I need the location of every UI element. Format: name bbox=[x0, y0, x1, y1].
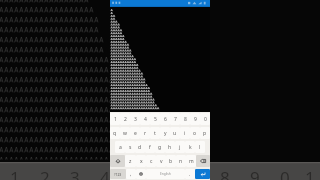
staticText: , bbox=[130, 171, 132, 178]
button[interactable]: u bbox=[170, 127, 180, 139]
button[interactable]: y bbox=[160, 127, 170, 139]
button[interactable]: h bbox=[165, 141, 175, 153]
staticText: h bbox=[168, 144, 172, 151]
staticText: 9 bbox=[250, 166, 260, 180]
staticText: g bbox=[158, 144, 162, 151]
staticText: 4 bbox=[144, 116, 147, 123]
staticText: 3 bbox=[134, 116, 137, 123]
staticText: 6 bbox=[160, 166, 170, 180]
button[interactable]: 1 bbox=[110, 113, 120, 125]
staticText: q bbox=[113, 130, 117, 137]
button[interactable]: , bbox=[126, 169, 136, 179]
staticText: 3 bbox=[70, 166, 80, 180]
button[interactable]: 8 bbox=[180, 113, 190, 125]
button[interactable]: 3 bbox=[130, 113, 140, 125]
staticText: x bbox=[140, 158, 143, 165]
staticText: t bbox=[154, 130, 156, 137]
button[interactable]: 6 bbox=[160, 113, 170, 125]
button[interactable]: s bbox=[125, 141, 135, 153]
button[interactable]: w bbox=[120, 127, 130, 139]
staticText: 7 bbox=[174, 116, 177, 123]
button[interactable]: f bbox=[145, 141, 155, 153]
staticText: r bbox=[144, 130, 147, 137]
button[interactable]: e bbox=[130, 127, 140, 139]
button[interactable]: Enter bbox=[195, 169, 210, 179]
staticText: u bbox=[173, 130, 177, 137]
button[interactable]: Backspace bbox=[196, 155, 210, 167]
staticText: 5 bbox=[154, 116, 157, 123]
staticText: 8 bbox=[184, 116, 187, 123]
staticText: 1 bbox=[305, 166, 315, 180]
staticText: a bbox=[119, 144, 122, 151]
button[interactable]: j bbox=[175, 141, 185, 153]
button[interactable]: 5 bbox=[150, 113, 160, 125]
staticText: e bbox=[134, 130, 137, 137]
staticText: i bbox=[184, 130, 186, 137]
button[interactable]: v bbox=[156, 155, 166, 167]
staticText: 1 bbox=[114, 116, 117, 123]
button[interactable]: r bbox=[140, 127, 150, 139]
staticText: 5 bbox=[130, 166, 140, 180]
button[interactable]: x bbox=[136, 155, 146, 167]
button[interactable]: m bbox=[186, 155, 196, 167]
staticText: s bbox=[129, 144, 132, 151]
button[interactable]: English bbox=[146, 169, 185, 179]
staticText: 2 bbox=[40, 166, 50, 180]
staticText: 2 bbox=[124, 116, 127, 123]
staticText: 0 bbox=[204, 116, 207, 123]
button[interactable]: q bbox=[110, 127, 120, 139]
button[interactable]: i bbox=[180, 127, 190, 139]
staticText: 8 bbox=[220, 166, 230, 180]
button[interactable]: c bbox=[146, 155, 156, 167]
button[interactable]: . bbox=[185, 169, 195, 179]
staticText: . bbox=[189, 171, 191, 178]
staticText: 6 bbox=[164, 116, 167, 123]
button[interactable]: n bbox=[176, 155, 186, 167]
staticText: b bbox=[169, 158, 173, 165]
button[interactable]: b bbox=[166, 155, 176, 167]
button[interactable]: Shift bbox=[110, 155, 125, 167]
staticText: 9 bbox=[194, 116, 197, 123]
button[interactable]: o bbox=[190, 127, 200, 139]
staticText: p bbox=[203, 130, 207, 137]
staticText: d bbox=[138, 144, 142, 151]
staticText: l bbox=[199, 144, 201, 151]
staticText: 0 bbox=[280, 166, 290, 180]
staticText: f bbox=[149, 144, 151, 151]
staticText: 7 bbox=[190, 166, 200, 180]
staticText: ?123 bbox=[114, 172, 122, 177]
button[interactable]: 0 bbox=[200, 113, 210, 125]
button[interactable]: k bbox=[185, 141, 195, 153]
button[interactable]: 7 bbox=[170, 113, 180, 125]
staticText: z bbox=[129, 158, 132, 165]
staticText: m bbox=[189, 158, 194, 165]
staticText: 1 bbox=[10, 166, 20, 180]
button[interactable]: 4 bbox=[140, 113, 150, 125]
button[interactable]: a bbox=[115, 141, 125, 153]
button[interactable]: p bbox=[200, 127, 210, 139]
staticText: y bbox=[164, 130, 167, 137]
button[interactable]: z bbox=[125, 155, 136, 167]
staticText: o bbox=[193, 130, 197, 137]
staticText: w bbox=[123, 130, 127, 137]
button[interactable]: l bbox=[195, 141, 205, 153]
button[interactable]: Emoji bbox=[136, 169, 146, 179]
staticText: n bbox=[179, 158, 183, 165]
button[interactable]: d bbox=[135, 141, 145, 153]
staticText: English bbox=[160, 172, 171, 176]
button[interactable]: ?123 bbox=[110, 169, 126, 179]
button[interactable]: 9 bbox=[190, 113, 200, 125]
staticText: 4 bbox=[100, 166, 110, 180]
button[interactable]: 2 bbox=[120, 113, 130, 125]
staticText: v bbox=[160, 158, 163, 165]
button[interactable]: t bbox=[150, 127, 160, 139]
button[interactable]: g bbox=[155, 141, 165, 153]
staticText: c bbox=[150, 158, 153, 165]
staticText: k bbox=[189, 144, 192, 151]
staticText: j bbox=[179, 144, 181, 151]
